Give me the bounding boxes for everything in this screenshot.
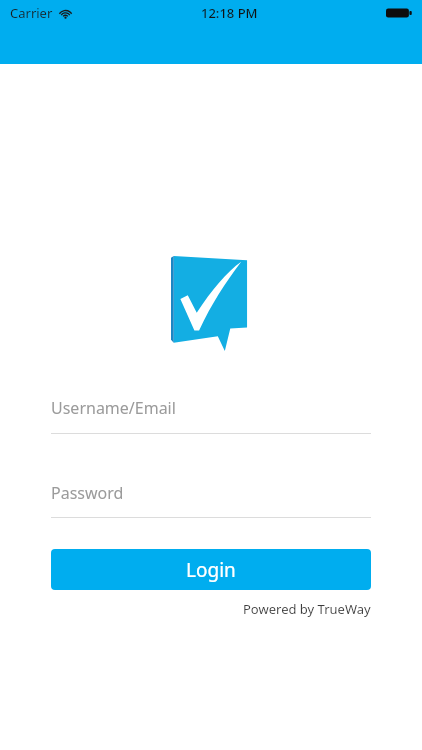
button[interactable]: Password <box>51 474 371 518</box>
staticText: Username/Email <box>51 397 176 419</box>
staticText: 12:18 PM <box>201 4 258 22</box>
other: TrueWay logo <box>171 253 249 351</box>
other: Wi-Fi <box>58 7 73 19</box>
staticText: Password <box>51 482 124 504</box>
button[interactable]: Login <box>51 549 371 590</box>
button[interactable]: Username/Email <box>51 381 371 434</box>
other: Battery full <box>386 7 412 19</box>
staticText: Powered by TrueWay <box>243 600 371 618</box>
staticText: Carrier <box>10 4 53 22</box>
staticText: Login <box>186 557 236 583</box>
